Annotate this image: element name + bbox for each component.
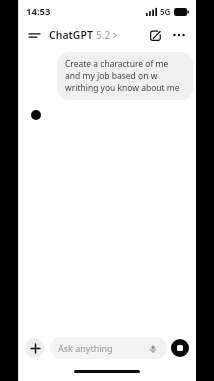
button[interactable]: Ask anything (50, 337, 167, 359)
button[interactable]: New chat (145, 25, 165, 45)
button[interactable]: More options (169, 25, 189, 45)
staticText: 5.2 (96, 28, 111, 42)
staticText: 14:53 (26, 5, 51, 18)
button[interactable]: Stop generating (171, 339, 189, 357)
staticText: Ask anything (58, 342, 146, 354)
button[interactable]: Create a characture of me and my job bas… (57, 52, 193, 100)
button[interactable]: Voice input (146, 342, 159, 355)
staticText: 5G (160, 6, 171, 17)
staticText: ChatGPT (49, 28, 93, 42)
button[interactable]: Open sidebar (25, 26, 43, 44)
button[interactable]: Add attachment (25, 338, 45, 358)
button[interactable]: ChatGPT (47, 26, 119, 44)
staticText: Create a characture of me and my job bas… (65, 58, 185, 94)
